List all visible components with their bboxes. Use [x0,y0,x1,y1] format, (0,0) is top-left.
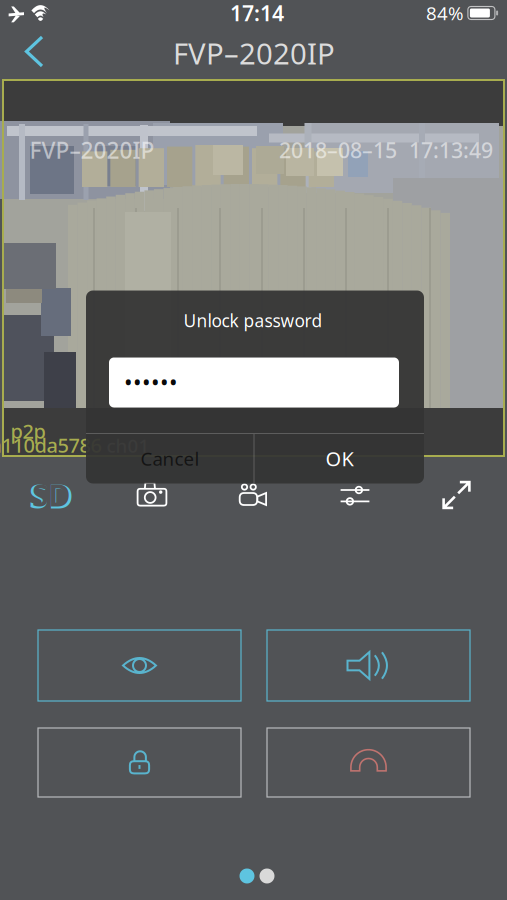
staticText: p2p [10,418,45,444]
button[interactable]: View [38,630,241,701]
staticText: SD [29,472,73,518]
staticText: •••••• [124,367,178,397]
staticText: a110da5786 [0,432,101,458]
staticText: FVP–2020IP [29,135,154,165]
staticText: Cancel [140,446,199,471]
staticText: FVP–2020IP [173,33,335,72]
button[interactable]: Back [4,27,64,75]
staticText: 17:14 [230,0,284,27]
button[interactable]: Full screen [406,467,507,523]
staticText: Unlock password [183,309,322,332]
button[interactable]: Record [203,468,304,524]
button[interactable]: Picture settings [304,468,405,524]
button[interactable]: Snapshot [101,468,202,524]
staticText: ch01 [106,433,149,458]
staticText: 2018–08–15 17:13:49 [279,136,493,164]
staticText: SD [29,472,73,518]
button[interactable]: Hang up [267,728,470,797]
button[interactable]: Audio [267,630,470,701]
button[interactable]: OK [255,434,424,483]
staticText: OK [325,445,353,472]
button[interactable]: SD [0,467,101,523]
staticText: 84% [426,1,464,25]
button[interactable]: Cancel [86,434,254,483]
button[interactable]: Unlock [38,728,241,797]
